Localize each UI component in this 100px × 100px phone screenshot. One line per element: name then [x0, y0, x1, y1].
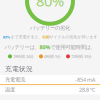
staticText: まで充電すると、: [10, 34, 42, 39]
staticText: 80%: [39, 44, 50, 51]
button[interactable]: 温度: [0, 85, 100, 94]
staticText: 0.80: [42, 34, 49, 40]
staticText: 充電状況: [5, 65, 33, 73]
staticText: 充電電流: [5, 76, 25, 83]
button[interactable]: 充電電流: [0, 75, 100, 84]
staticText: 72時間 33分: [71, 54, 92, 59]
staticText: で使用可能時間は、: [50, 44, 95, 50]
staticText: -854 mA: [75, 76, 95, 83]
staticText: サイクルの劣化が伴います: [49, 34, 97, 39]
staticText: 80%: [2, 34, 10, 40]
staticText: 温度: [5, 86, 15, 93]
staticText: バッテリーは、: [4, 44, 39, 50]
staticText: 18時間 24分: [13, 54, 34, 59]
staticText: 4時間 9分: [44, 54, 61, 59]
staticText: 80%: [36, 0, 64, 10]
staticText: 28.8 ℃: [79, 86, 95, 93]
staticText: バッテリーの劣化: [30, 25, 70, 31]
